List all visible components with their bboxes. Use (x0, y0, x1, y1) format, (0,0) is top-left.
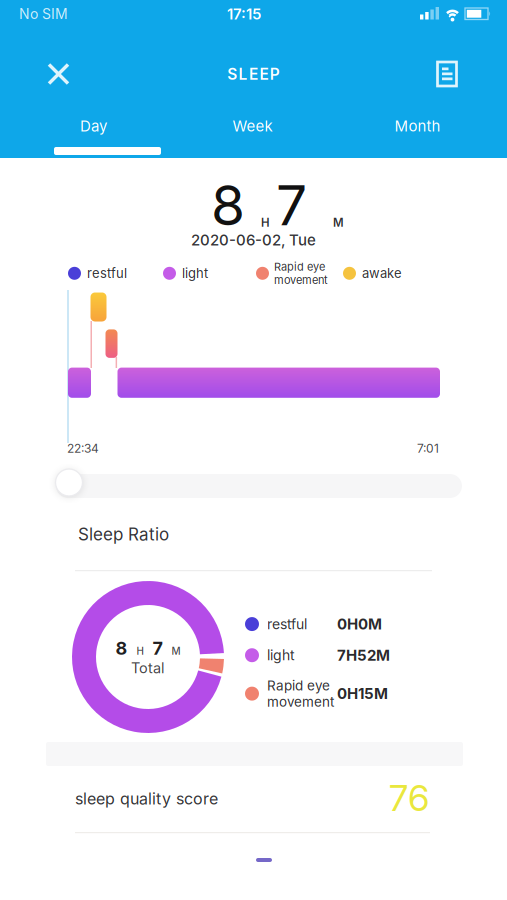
staticText: 0H0M (337, 615, 382, 633)
staticText: H (136, 645, 143, 657)
staticText: Day (80, 117, 107, 135)
staticText: 0H15M (337, 685, 388, 703)
staticText: Total (131, 659, 165, 677)
staticText: L (239, 65, 248, 83)
staticText: 7:01 (417, 441, 439, 455)
button[interactable]: Day (0, 106, 169, 146)
staticText: Rapid eye movement (274, 260, 328, 287)
button[interactable]: Timeline position (55, 469, 82, 496)
staticText: No SIM (19, 5, 68, 22)
staticText: light (267, 647, 295, 664)
staticText: 2020-06-02, Tue (191, 231, 316, 249)
button[interactable]: Week (169, 106, 338, 146)
staticText: 17:15 (227, 5, 261, 23)
staticText: Week (232, 117, 272, 135)
staticText: restful (267, 616, 307, 632)
button[interactable]: Sleep report (426, 52, 468, 95)
staticText: 76 (389, 776, 429, 820)
staticText: Sleep Ratio (78, 524, 169, 545)
staticText: S (227, 65, 237, 83)
staticText: awake (362, 265, 402, 281)
staticText: E (249, 65, 258, 83)
staticText: E (259, 65, 268, 83)
staticText: 7 (276, 172, 307, 238)
staticText: M (171, 645, 180, 657)
staticText: 8 (115, 637, 127, 659)
staticText: P (270, 65, 280, 83)
staticText: M (333, 216, 344, 229)
staticText: restful (87, 265, 127, 281)
staticText: Rapid eye movement (267, 677, 334, 710)
staticText: light (182, 265, 208, 281)
button[interactable]: Month (338, 106, 507, 146)
staticText: Month (394, 117, 440, 135)
staticText: sleep quality score (75, 789, 218, 808)
staticText: 22:34 (67, 441, 99, 455)
staticText: 7 (152, 637, 162, 659)
staticText: 8 (211, 172, 245, 238)
staticText: H (261, 216, 270, 229)
staticText: 7H52M (337, 646, 390, 664)
button[interactable]: Close (36, 51, 81, 96)
